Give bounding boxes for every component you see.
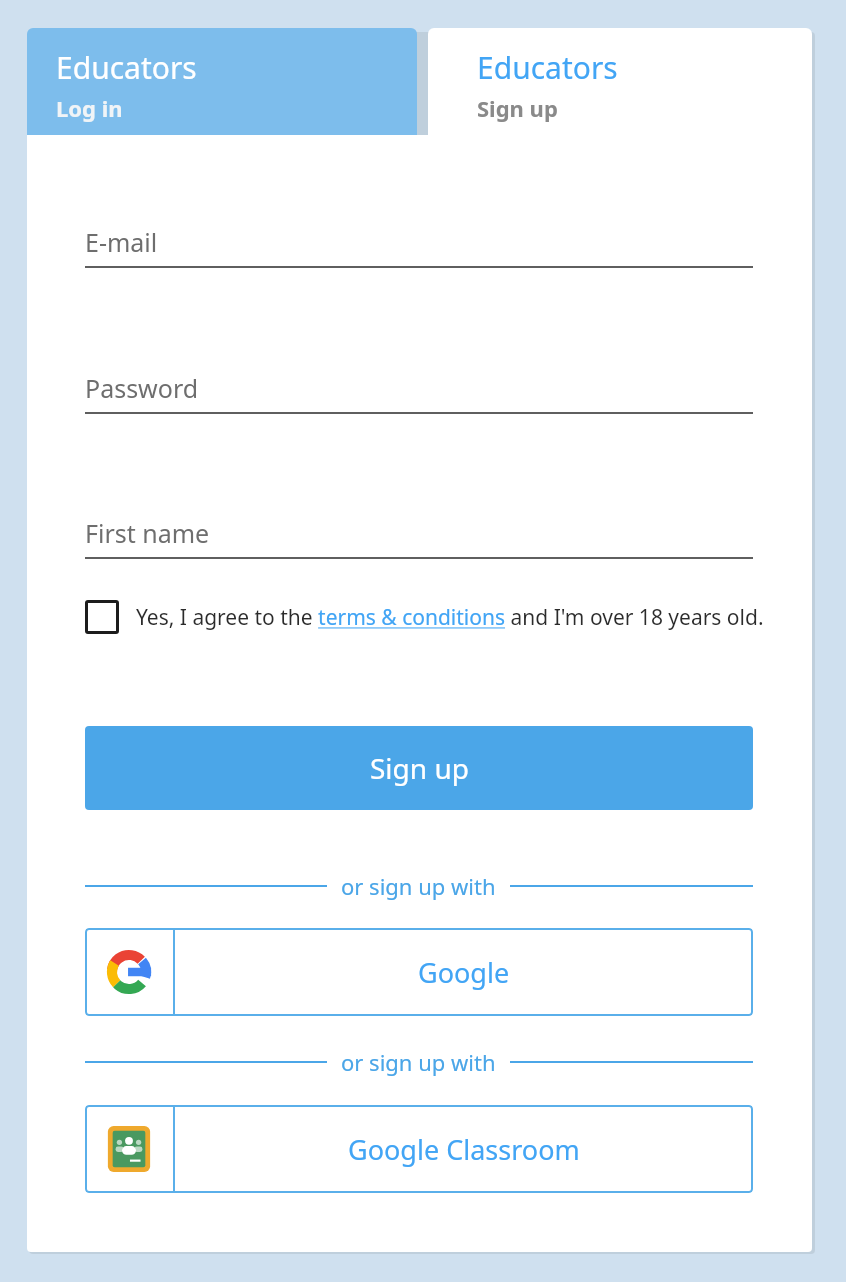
staticText: or sign up with [341,1047,496,1077]
staticText: Educators [477,47,618,88]
button[interactable]: Password [85,371,753,414]
staticText: First name [85,516,210,550]
button[interactable]: Sign up with Google [85,928,753,1016]
button[interactable]: Sign up [85,726,753,810]
button[interactable]: Educators [27,28,417,135]
staticText: E-mail [85,225,158,259]
staticText: Log in [56,93,123,123]
staticText: Sign up [477,93,558,123]
staticText: Yes, I agree to the terms & conditions a… [136,603,764,632]
staticText: Password [85,371,199,405]
staticText: Educators [56,47,197,88]
button[interactable]: Yes, I agree to the terms & conditions a… [85,595,764,639]
staticText: Google Classroom [348,1131,580,1168]
button[interactable]: First name [85,516,753,559]
staticText: Google [418,954,510,991]
button[interactable]: E-mail [85,225,753,268]
button[interactable]: Sign up with Google Classroom [85,1105,753,1193]
staticText: Sign up [370,749,469,787]
button[interactable]: Educators [428,28,812,135]
staticText: or sign up with [341,871,496,901]
